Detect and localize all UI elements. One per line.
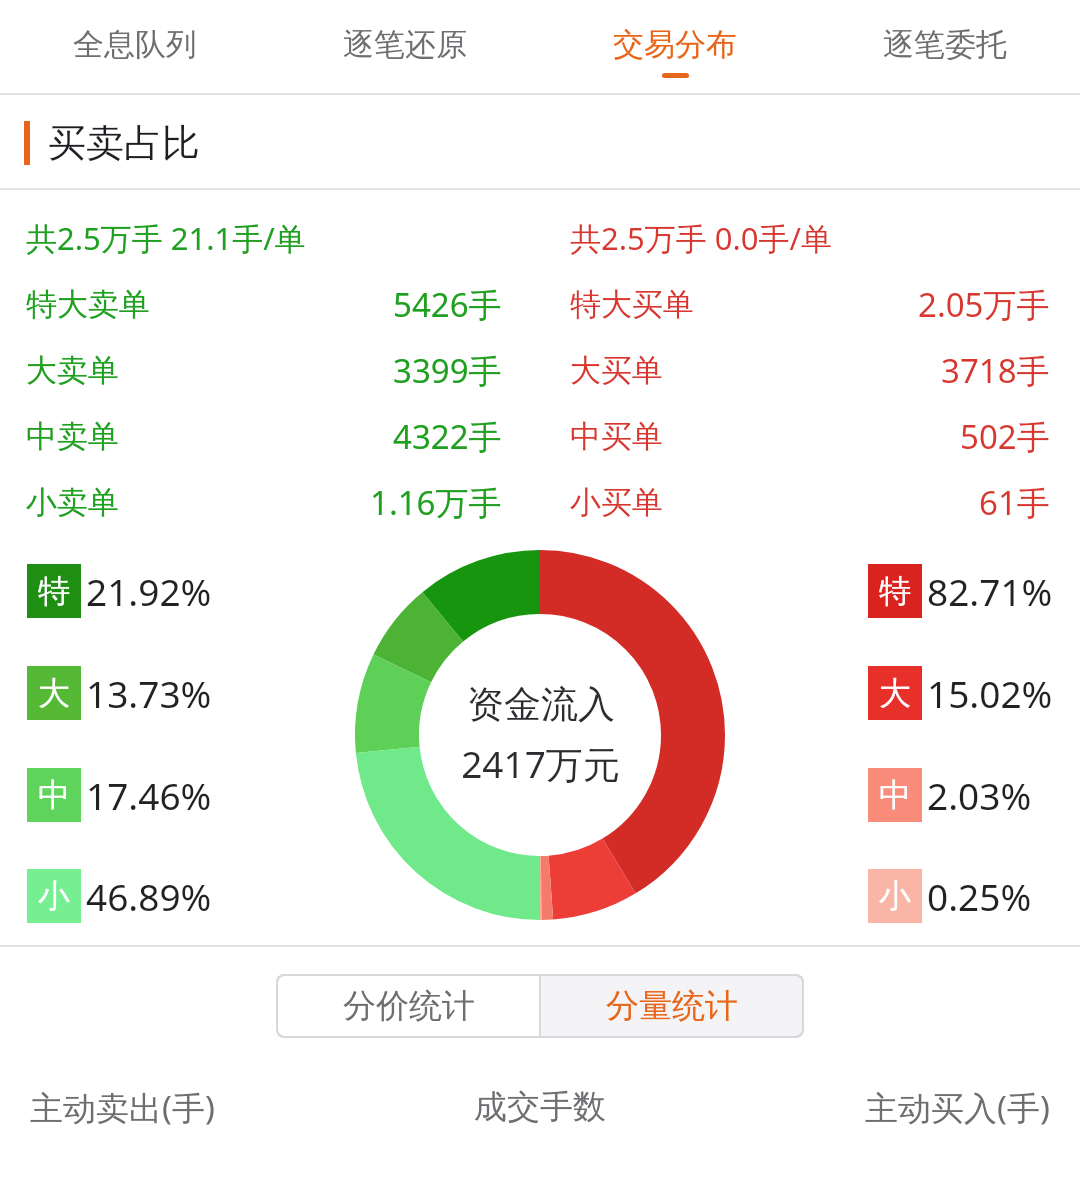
staticText: 大 (879, 673, 911, 713)
staticText: 3399手 (393, 348, 502, 393)
staticText: 小 (879, 876, 911, 916)
staticText: 中 (38, 775, 70, 815)
staticText: 小买单 (570, 483, 663, 522)
staticText: 资金流入 (467, 681, 615, 728)
staticText: 大买单 (570, 351, 663, 390)
staticText: 5426手 (393, 282, 502, 327)
button[interactable]: 特 (27, 540, 212, 642)
staticText: 0.25% (927, 871, 1032, 921)
staticText: 中买单 (570, 417, 663, 456)
staticText: 小卖单 (26, 483, 119, 522)
staticText: 逐笔委托 (883, 25, 1007, 64)
staticText: 2.05万手 (918, 282, 1050, 327)
staticText: 2417万元 (461, 738, 620, 789)
staticText: 中 (879, 775, 911, 815)
staticText: 逐笔还原 (343, 25, 467, 64)
staticText: 特 (879, 571, 911, 611)
staticText: 2.03% (927, 770, 1032, 820)
button[interactable]: 交易分布 (540, 0, 810, 95)
staticText: 17.46% (86, 770, 212, 820)
button[interactable]: 大 (27, 642, 212, 744)
button[interactable]: 中 (868, 744, 1032, 846)
button[interactable]: 逐笔委托 (810, 0, 1080, 95)
staticText: 3718手 (941, 348, 1050, 393)
staticText: 成交手数 (474, 1086, 606, 1128)
staticText: 分价统计 (343, 985, 475, 1027)
staticText: 特大买单 (570, 285, 694, 324)
button[interactable]: 中 (27, 744, 212, 846)
staticText: 13.73% (86, 668, 212, 718)
button[interactable]: 特 (868, 540, 1053, 642)
staticText: 21.92% (86, 566, 212, 616)
staticText: 小 (38, 876, 70, 916)
staticText: 交易分布 (613, 25, 737, 64)
staticText: 共2.5万手 0.0手/单 (570, 217, 833, 259)
button[interactable]: 分量统计 (541, 976, 802, 1036)
button[interactable]: 大 (868, 642, 1053, 744)
staticText: 502手 (960, 414, 1050, 459)
staticText: 15.02% (927, 668, 1053, 718)
staticText: 主动卖出(手) (30, 1085, 215, 1130)
staticText: 中卖单 (26, 417, 119, 456)
staticText: 分量统计 (606, 985, 738, 1027)
staticText: 特 (38, 571, 70, 611)
staticText: 买卖占比 (48, 119, 200, 167)
staticText: 4322手 (393, 414, 502, 459)
staticText: 1.16万手 (370, 480, 502, 525)
staticText: 61手 (979, 480, 1050, 525)
staticText: 大卖单 (26, 351, 119, 390)
staticText: 46.89% (86, 871, 212, 921)
staticText: 共2.5万手 21.1手/单 (26, 217, 306, 259)
staticText: 主动买入(手) (865, 1085, 1050, 1130)
staticText: 82.71% (927, 566, 1053, 616)
staticText: 大 (38, 673, 70, 713)
button[interactable]: 全息队列 (0, 0, 270, 95)
button[interactable]: 小 (27, 846, 212, 945)
button[interactable]: 逐笔还原 (270, 0, 540, 95)
staticText: 全息队列 (73, 25, 197, 64)
button[interactable]: 小 (868, 846, 1032, 945)
staticText: 特大卖单 (26, 285, 150, 324)
button[interactable]: 分价统计 (278, 976, 539, 1036)
